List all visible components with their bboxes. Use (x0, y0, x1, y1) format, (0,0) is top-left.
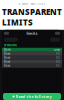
staticText: $0 (56, 60, 60, 63)
staticText: TRANSPARENT LIMITS (2, 6, 62, 28)
staticText: Row (4, 56, 10, 59)
staticText: SPENDING (4, 43, 17, 47)
button[interactable]: Read the full story (0, 93, 64, 100)
staticText: Item (4, 48, 10, 51)
staticText: Row (4, 52, 10, 55)
staticText: Read the full story (15, 94, 51, 99)
staticText: Limit (54, 48, 60, 51)
staticText: $0 (56, 64, 60, 67)
staticText: $0 (56, 56, 60, 59)
staticText: $0 (56, 52, 60, 55)
staticText: A TEAM · MAY 2023 (18, 2, 45, 5)
staticText: limits (26, 31, 37, 36)
staticText: Row (4, 64, 10, 67)
staticText: Row (4, 60, 10, 63)
